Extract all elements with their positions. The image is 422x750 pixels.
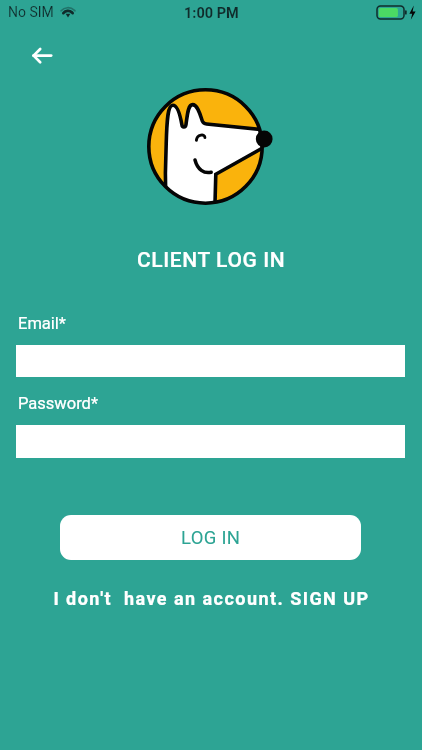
button[interactable]: Back [21,36,61,76]
staticText: Email* [18,314,66,333]
staticText: CLIENT LOG IN [137,248,286,273]
button[interactable]: LOG IN [60,515,361,560]
staticText: Password* [18,394,98,413]
button[interactable]: I don't have an account. SIGN UP [0,588,422,609]
staticText: I don't have an account. SIGN UP [53,588,370,609]
staticText: 1:00 PM [184,5,239,22]
staticText: LOG IN [181,527,241,549]
staticText: No SIM [8,4,54,20]
